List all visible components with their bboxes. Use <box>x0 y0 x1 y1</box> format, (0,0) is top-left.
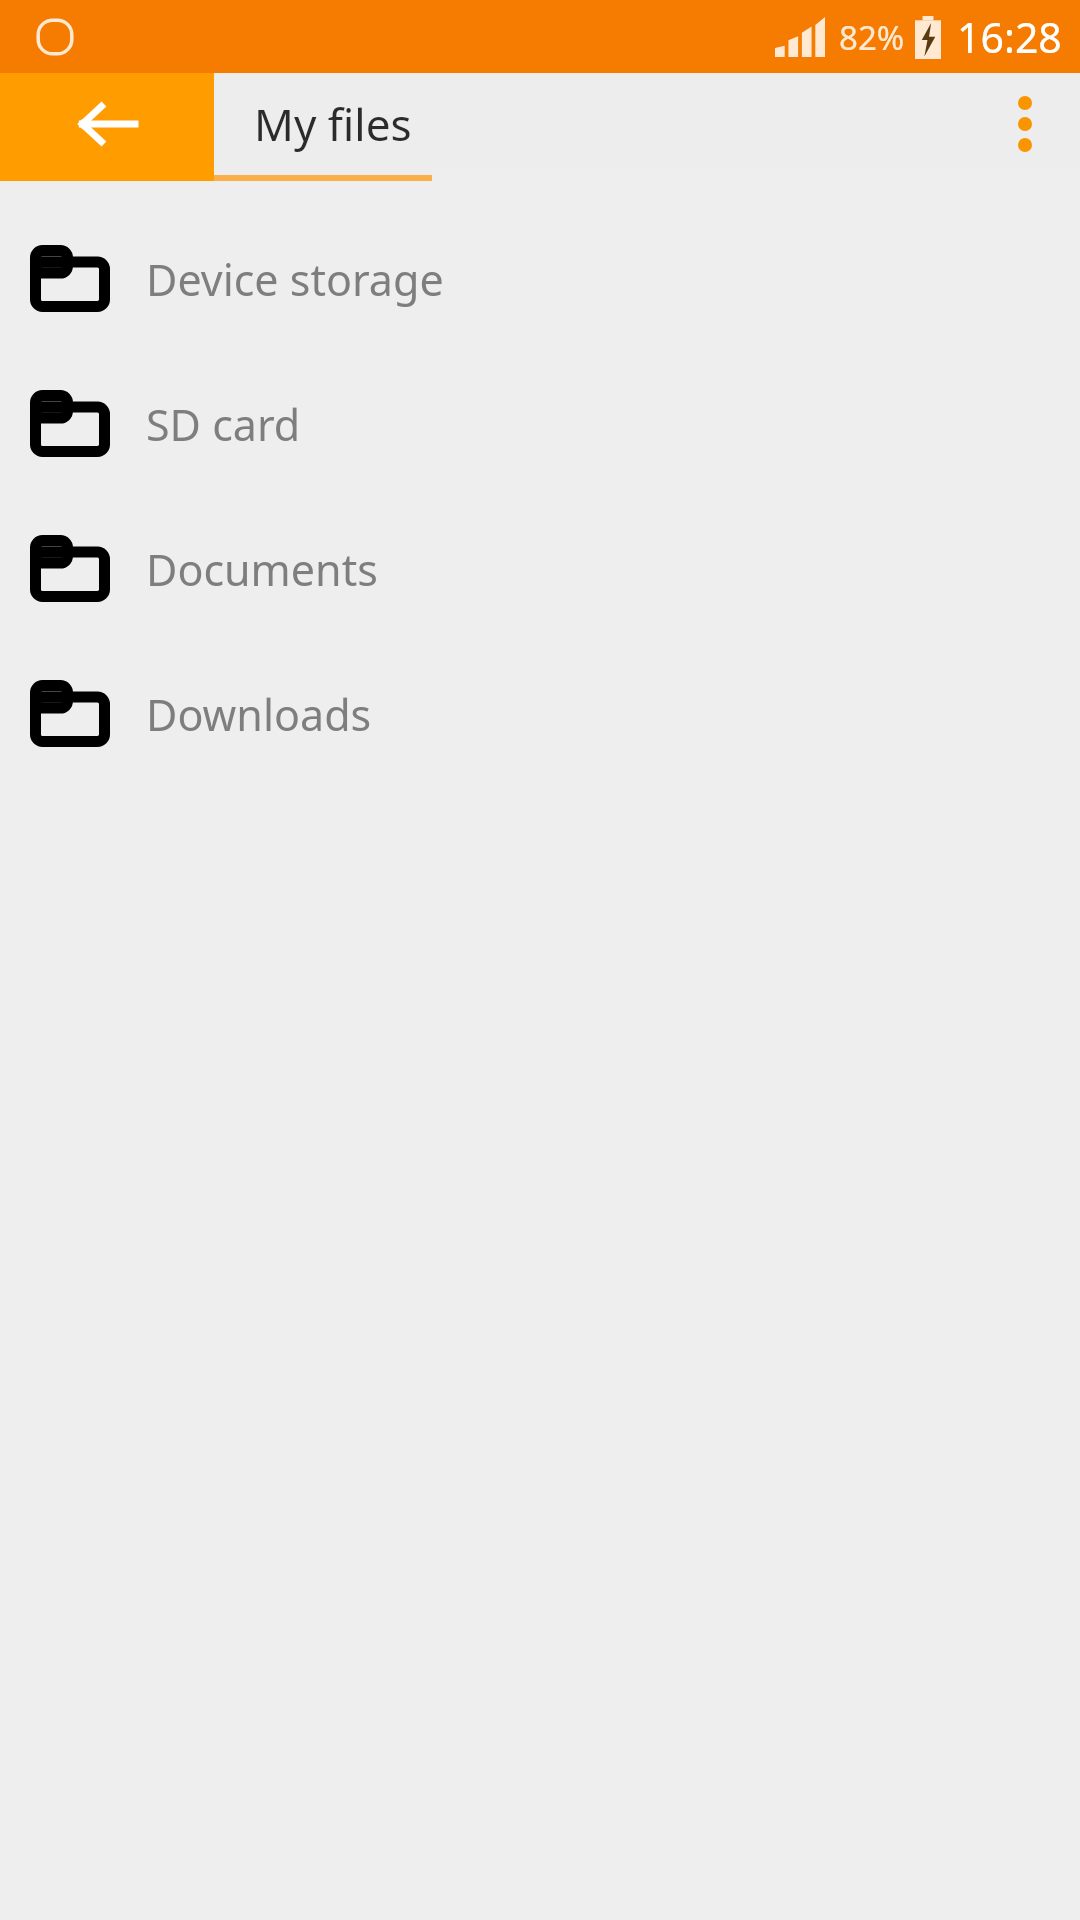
staticText: 82% <box>839 15 905 60</box>
button[interactable]: Downloads <box>0 642 1080 787</box>
button[interactable]: Documents <box>0 497 1080 642</box>
button[interactable]: Back <box>0 73 214 175</box>
staticText: Documents <box>146 540 378 599</box>
staticText: Device storage <box>146 250 444 309</box>
staticText: SD card <box>146 395 301 454</box>
button[interactable]: SD card <box>0 352 1080 497</box>
staticText: Downloads <box>146 685 372 744</box>
staticText: My files <box>254 94 412 154</box>
button[interactable]: My files <box>214 73 432 175</box>
button[interactable]: More options <box>970 73 1080 175</box>
staticText: 16:28 <box>957 9 1062 65</box>
button[interactable]: Device storage <box>0 207 1080 352</box>
